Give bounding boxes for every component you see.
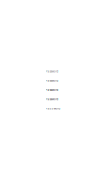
staticText: Password (45, 107, 60, 110)
staticText: Password (45, 98, 58, 101)
staticText: Password (45, 88, 58, 92)
staticText: Password (45, 70, 58, 73)
staticText: Password (45, 79, 58, 82)
